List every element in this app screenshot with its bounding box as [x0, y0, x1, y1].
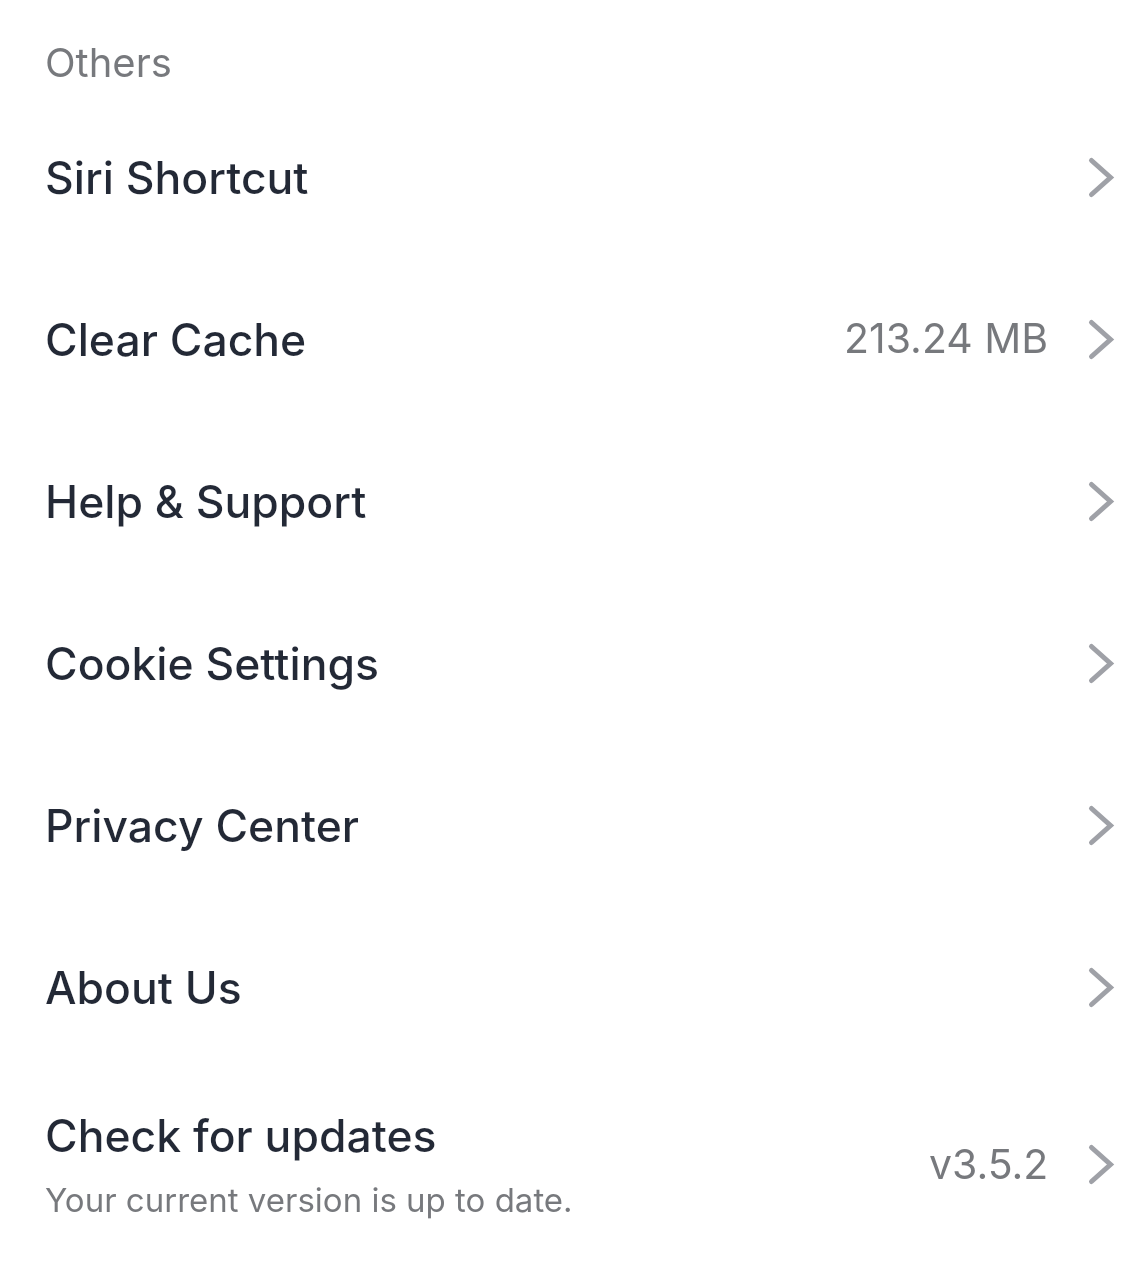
button[interactable]: Privacy Center	[0, 761, 1143, 923]
button[interactable]: About Us	[0, 923, 1143, 1085]
button[interactable]: Check for updates	[0, 1085, 1143, 1271]
button[interactable]: Help & Support	[0, 437, 1143, 599]
other: Open About Us	[1089, 968, 1113, 1007]
staticText: Clear Cache	[45, 313, 307, 367]
staticText: Help & Support	[45, 475, 367, 529]
other: Open Help & Support	[1089, 482, 1113, 521]
button[interactable]: Siri Shortcut	[0, 113, 1143, 275]
staticText: Your current version is up to date.	[45, 1180, 573, 1220]
staticText: Others	[45, 38, 172, 86]
staticText: v3.5.2	[929, 1139, 1049, 1189]
staticText: Cookie Settings	[45, 637, 379, 691]
other: Open Check for updates	[1089, 1145, 1113, 1184]
button[interactable]: Clear Cache	[0, 275, 1143, 437]
other: Open Privacy Center	[1089, 806, 1113, 845]
button[interactable]: Cookie Settings	[0, 599, 1143, 761]
staticText: Privacy Center	[45, 799, 359, 853]
staticText: About Us	[45, 961, 242, 1015]
other: Open Clear Cache	[1089, 320, 1113, 359]
staticText: Siri Shortcut	[45, 151, 309, 205]
other: Open Cookie Settings	[1089, 644, 1113, 683]
other: Open Siri Shortcut	[1089, 158, 1113, 197]
staticText: Check for updates	[45, 1109, 437, 1163]
staticText: 213.24 MB	[844, 313, 1049, 363]
